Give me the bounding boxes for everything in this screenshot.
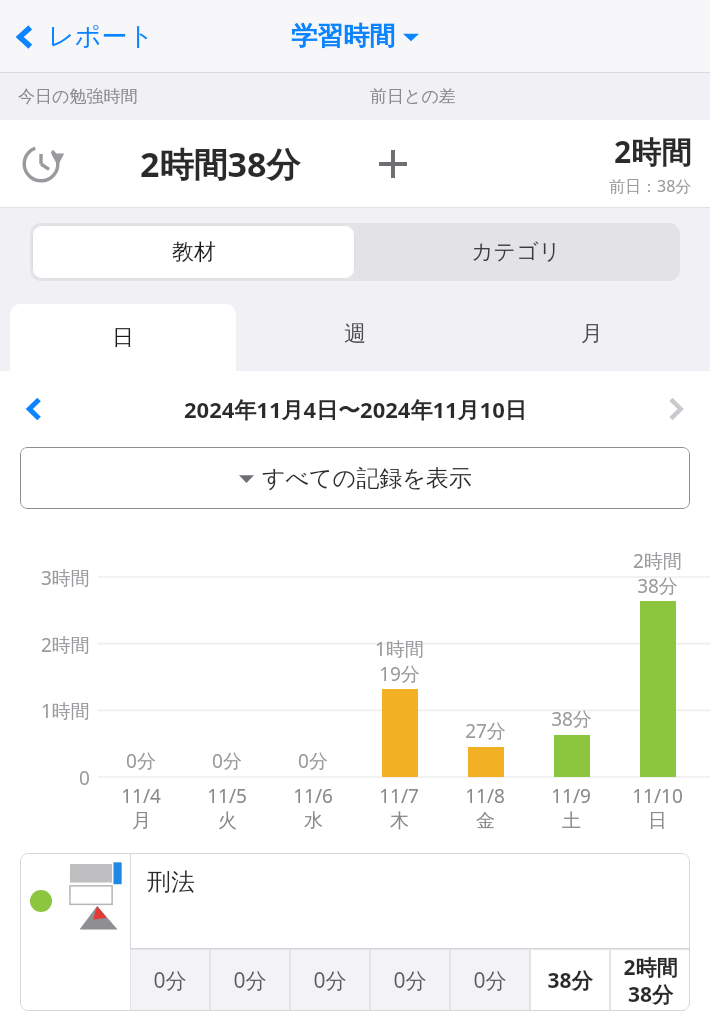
staticText: 日: [648, 809, 667, 833]
staticText: 木: [390, 809, 409, 833]
staticText: 3時間: [41, 565, 90, 589]
staticText: 刑法: [147, 867, 195, 897]
staticText: 土: [562, 809, 581, 833]
staticText: 2024年11月4日〜2024年11月10日: [184, 394, 527, 424]
button[interactable]: すべての記録を表示: [20, 447, 690, 509]
staticText: 教材: [172, 238, 216, 266]
staticText: 日: [112, 324, 134, 352]
button[interactable]: 週: [236, 296, 473, 371]
staticText: 11/6: [293, 783, 333, 809]
staticText: 月: [581, 320, 603, 348]
staticText: 1時間: [41, 698, 90, 722]
staticText: 学習時間: [291, 20, 395, 53]
staticText: 11/9: [551, 783, 591, 809]
staticText: 0分: [393, 966, 427, 995]
staticText: 0分: [212, 748, 242, 774]
staticText: 38分: [551, 706, 592, 732]
button[interactable]: 教材: [32, 225, 355, 279]
staticText: 週: [344, 320, 366, 348]
staticText: 38分: [547, 966, 593, 995]
staticText: 2時間: [614, 131, 692, 172]
button[interactable]: レポート: [0, 14, 166, 59]
staticText: 2時間 38分: [633, 548, 682, 598]
other: Add: [375, 146, 411, 182]
button[interactable]: 月: [473, 296, 710, 371]
staticText: 27分: [465, 718, 506, 744]
button[interactable]: 日: [10, 304, 236, 371]
staticText: 金: [476, 809, 495, 833]
staticText: 2時間: [41, 632, 90, 656]
staticText: 火: [218, 809, 237, 833]
staticText: カテゴリ: [471, 238, 562, 266]
other: History: [20, 143, 62, 185]
staticText: 0分: [126, 748, 156, 774]
staticText: すべての記録を表示: [262, 464, 472, 493]
staticText: 前日：38分: [609, 175, 692, 197]
staticText: 0分: [153, 966, 187, 995]
staticText: 2時間 38分: [623, 953, 678, 1008]
staticText: 11/5: [207, 783, 247, 809]
staticText: 0分: [473, 966, 507, 995]
staticText: 0分: [233, 966, 267, 995]
button[interactable]: 学習時間: [283, 12, 427, 61]
staticText: 11/8: [465, 783, 505, 809]
staticText: 水: [304, 809, 323, 833]
staticText: 月: [132, 809, 151, 833]
button[interactable]: カテゴリ: [355, 225, 678, 279]
button[interactable]: 刑法: [20, 853, 690, 1011]
staticText: レポート: [48, 20, 154, 53]
staticText: 2時間38分: [140, 141, 301, 187]
button[interactable]: Previous week: [14, 389, 54, 429]
button[interactable]: Next week: [656, 389, 696, 429]
staticText: 0: [79, 765, 90, 789]
staticText: 前日との差: [370, 86, 456, 107]
staticText: 11/7: [379, 783, 419, 809]
staticText: 11/4: [121, 783, 161, 809]
staticText: 0分: [313, 966, 347, 995]
staticText: 0分: [298, 748, 328, 774]
staticText: 11/10: [632, 783, 683, 809]
staticText: 今日の勉強時間: [18, 86, 138, 107]
staticText: 1時間 19分: [375, 636, 424, 686]
